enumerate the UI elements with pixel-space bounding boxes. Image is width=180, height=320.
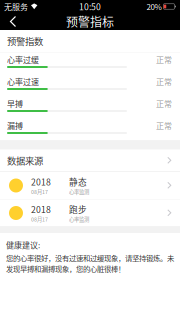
button[interactable]: 返回 (0, 13, 26, 30)
button[interactable]: 2018 (0, 199, 180, 226)
staticText: 健康建议: (6, 239, 40, 251)
staticText: 心率监测 (69, 215, 89, 223)
staticText: 跑步 (69, 203, 87, 215)
staticText: 08月17 (31, 188, 48, 196)
staticText: 08月17 (31, 215, 48, 223)
staticText: 心率过速 (7, 76, 39, 87)
button[interactable]: 2018 (0, 172, 180, 199)
staticText: 正常 (156, 76, 172, 87)
staticText: 静态 (69, 175, 87, 188)
staticText: 漏搏 (7, 120, 23, 131)
staticText: 正常 (156, 98, 172, 109)
staticText: 20% (146, 1, 161, 12)
staticText: 正常 (156, 54, 172, 65)
staticText: 2018 (31, 203, 51, 215)
staticText: 正常 (156, 120, 172, 131)
staticText: 心率过缓 (7, 54, 39, 65)
staticText: 预警指数 (7, 34, 43, 48)
staticText: 无服务 (4, 1, 28, 12)
staticText: 10:50 (79, 0, 101, 13)
staticText: 数据来源 (7, 154, 43, 167)
staticText: 心率监测 (69, 188, 89, 196)
button[interactable]: 数据来源 (0, 149, 180, 171)
staticText: 预警指标 (66, 13, 114, 30)
staticText: 2018 (31, 175, 51, 188)
staticText: 您的心率很好，没有过速和过缓现象，请坚持锻炼。未发现早搏和漏搏现象，您的心脏很棒… (6, 253, 174, 274)
staticText: 早搏 (7, 98, 23, 109)
